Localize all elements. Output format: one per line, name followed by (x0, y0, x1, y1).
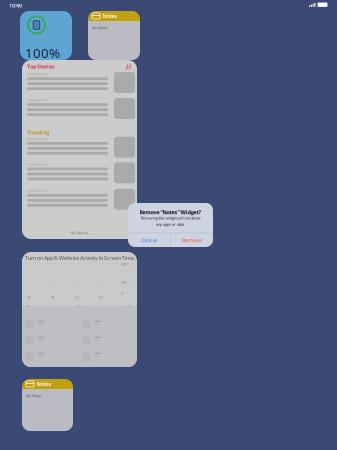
staticText: No Notes (26, 393, 42, 398)
staticText: 18 (98, 295, 102, 300)
button[interactable]: Cancel (128, 233, 170, 247)
button[interactable]: Screen Time widget (22, 252, 137, 367)
staticText: 100% (25, 44, 60, 62)
staticText: No Stories (70, 230, 88, 235)
staticText: 12 (74, 295, 78, 300)
button[interactable]: News widget (22, 60, 137, 239)
staticText: 30m (121, 279, 129, 285)
staticText: 10:40 (9, 2, 22, 9)
staticText: 06 (50, 295, 54, 300)
staticText: Remove (182, 237, 202, 244)
staticText: 60m (121, 261, 129, 267)
button[interactable]: Battery 100 percent (20, 11, 72, 60)
staticText: 00 (26, 295, 30, 300)
staticText: Trending (27, 129, 49, 136)
staticText: Notes (36, 380, 51, 388)
staticText: 0 (121, 290, 123, 296)
staticText: Notes (102, 12, 117, 20)
staticText: Cancel (141, 237, 157, 244)
button[interactable]: Notes (22, 379, 73, 431)
staticText: No Notes (92, 25, 108, 30)
staticText: Remove “Notes” Widget? (139, 209, 201, 216)
staticText: any apps or data. (156, 222, 185, 227)
staticText: Turn on App & Website Activity in Screen… (25, 254, 135, 262)
button[interactable]: Remove (171, 233, 213, 247)
staticText: Removing this widget will not delete (140, 215, 200, 221)
staticText: Top Stories (27, 63, 55, 70)
button[interactable]: Notes (88, 11, 140, 60)
